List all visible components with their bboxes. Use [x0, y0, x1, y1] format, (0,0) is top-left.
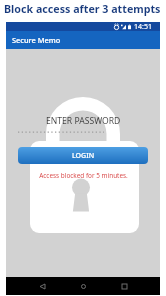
button[interactable]: Recent apps [104, 277, 145, 295]
staticText: Secure Memo [12, 35, 61, 45]
staticText: ENTER PASSWORD [46, 115, 121, 126]
button[interactable]: Secure Memo [6, 31, 160, 49]
staticText: Access blocked for 5 minutes. [39, 171, 128, 180]
staticText: Block access after 3 attempts [4, 2, 161, 17]
button[interactable]: Back [21, 277, 63, 295]
staticText: 14:51 [134, 22, 152, 31]
button[interactable]: LOGIN [18, 147, 148, 164]
button[interactable]: Home [63, 277, 104, 295]
staticText: LOGIN [72, 151, 95, 161]
